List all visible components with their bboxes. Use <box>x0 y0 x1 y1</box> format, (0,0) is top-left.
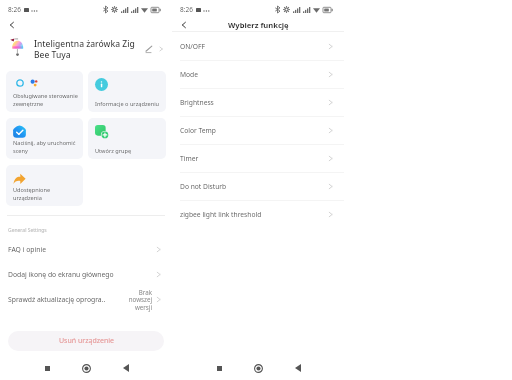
button[interactable]: Home <box>78 360 94 376</box>
staticText: Obsługiwane sterowanie zewnętrzne <box>13 92 79 108</box>
staticText: Naciśnij, aby uruchomić sceny <box>13 139 79 155</box>
button[interactable]: ON/OFF <box>172 33 344 60</box>
staticText: Wybierz funkcję <box>228 20 289 30</box>
button[interactable]: Home <box>250 360 266 376</box>
staticText: Do not Disturb <box>180 182 327 191</box>
staticText: Mode <box>180 70 327 79</box>
button[interactable]: Utwórz grupę <box>88 118 166 159</box>
button[interactable]: Brightness <box>172 89 344 116</box>
staticText: Udostępnione urządzenia <box>13 186 79 202</box>
staticText: General Settings <box>8 227 47 234</box>
button[interactable]: Mode <box>172 61 344 88</box>
staticText: Brightness <box>180 98 327 107</box>
staticText: 8:26 <box>180 5 193 14</box>
button[interactable]: Back <box>175 16 192 33</box>
button[interactable]: Do not Disturb <box>172 173 344 200</box>
staticText: Usuń urządzenie <box>59 336 114 346</box>
button[interactable]: Informacje o urządzeniu <box>88 71 166 112</box>
button[interactable]: zigbee light link threshold <box>172 201 344 228</box>
staticText: Informacje o urządzeniu <box>95 100 160 108</box>
staticText: zigbee light link threshold <box>180 210 327 219</box>
staticText: Brak nowszej wersji <box>124 288 152 312</box>
button[interactable]: Recents <box>211 360 227 376</box>
staticText: Inteligentna żarówka Zig Bee Tuya <box>34 38 142 60</box>
button[interactable]: Timer <box>172 145 344 172</box>
staticText: Dodaj ikonę do ekranu głównego <box>8 270 155 279</box>
staticText: Color Temp <box>180 126 327 135</box>
staticText: 8:26 <box>8 5 21 14</box>
staticText: FAQ i opinie <box>8 245 155 254</box>
button[interactable]: Dodaj ikonę do ekranu głównego <box>0 262 172 287</box>
staticText: Timer <box>180 154 327 163</box>
staticText: Sprawdź aktualizację oprogra.. <box>8 295 124 304</box>
button[interactable]: FAQ i opinie <box>0 237 172 262</box>
button[interactable]: Usuń urządzenie <box>8 331 164 351</box>
button[interactable]: Back <box>118 360 134 376</box>
button[interactable]: Inteligentna żarówka Zig Bee Tuya <box>0 34 172 64</box>
staticText: Utwórz grupę <box>95 147 132 155</box>
button[interactable]: Back <box>290 360 306 376</box>
button[interactable]: Color Temp <box>172 117 344 144</box>
button[interactable]: Back <box>3 16 20 33</box>
staticText: ON/OFF <box>180 42 327 51</box>
button[interactable]: Obsługiwane sterowanie zewnętrzne <box>6 71 83 112</box>
button[interactable]: Sprawdź aktualizację oprogra.. <box>0 287 172 312</box>
button[interactable]: Recents <box>39 360 55 376</box>
button[interactable]: Udostępnione urządzenia <box>6 165 83 206</box>
button[interactable]: Naciśnij, aby uruchomić sceny <box>6 118 83 159</box>
